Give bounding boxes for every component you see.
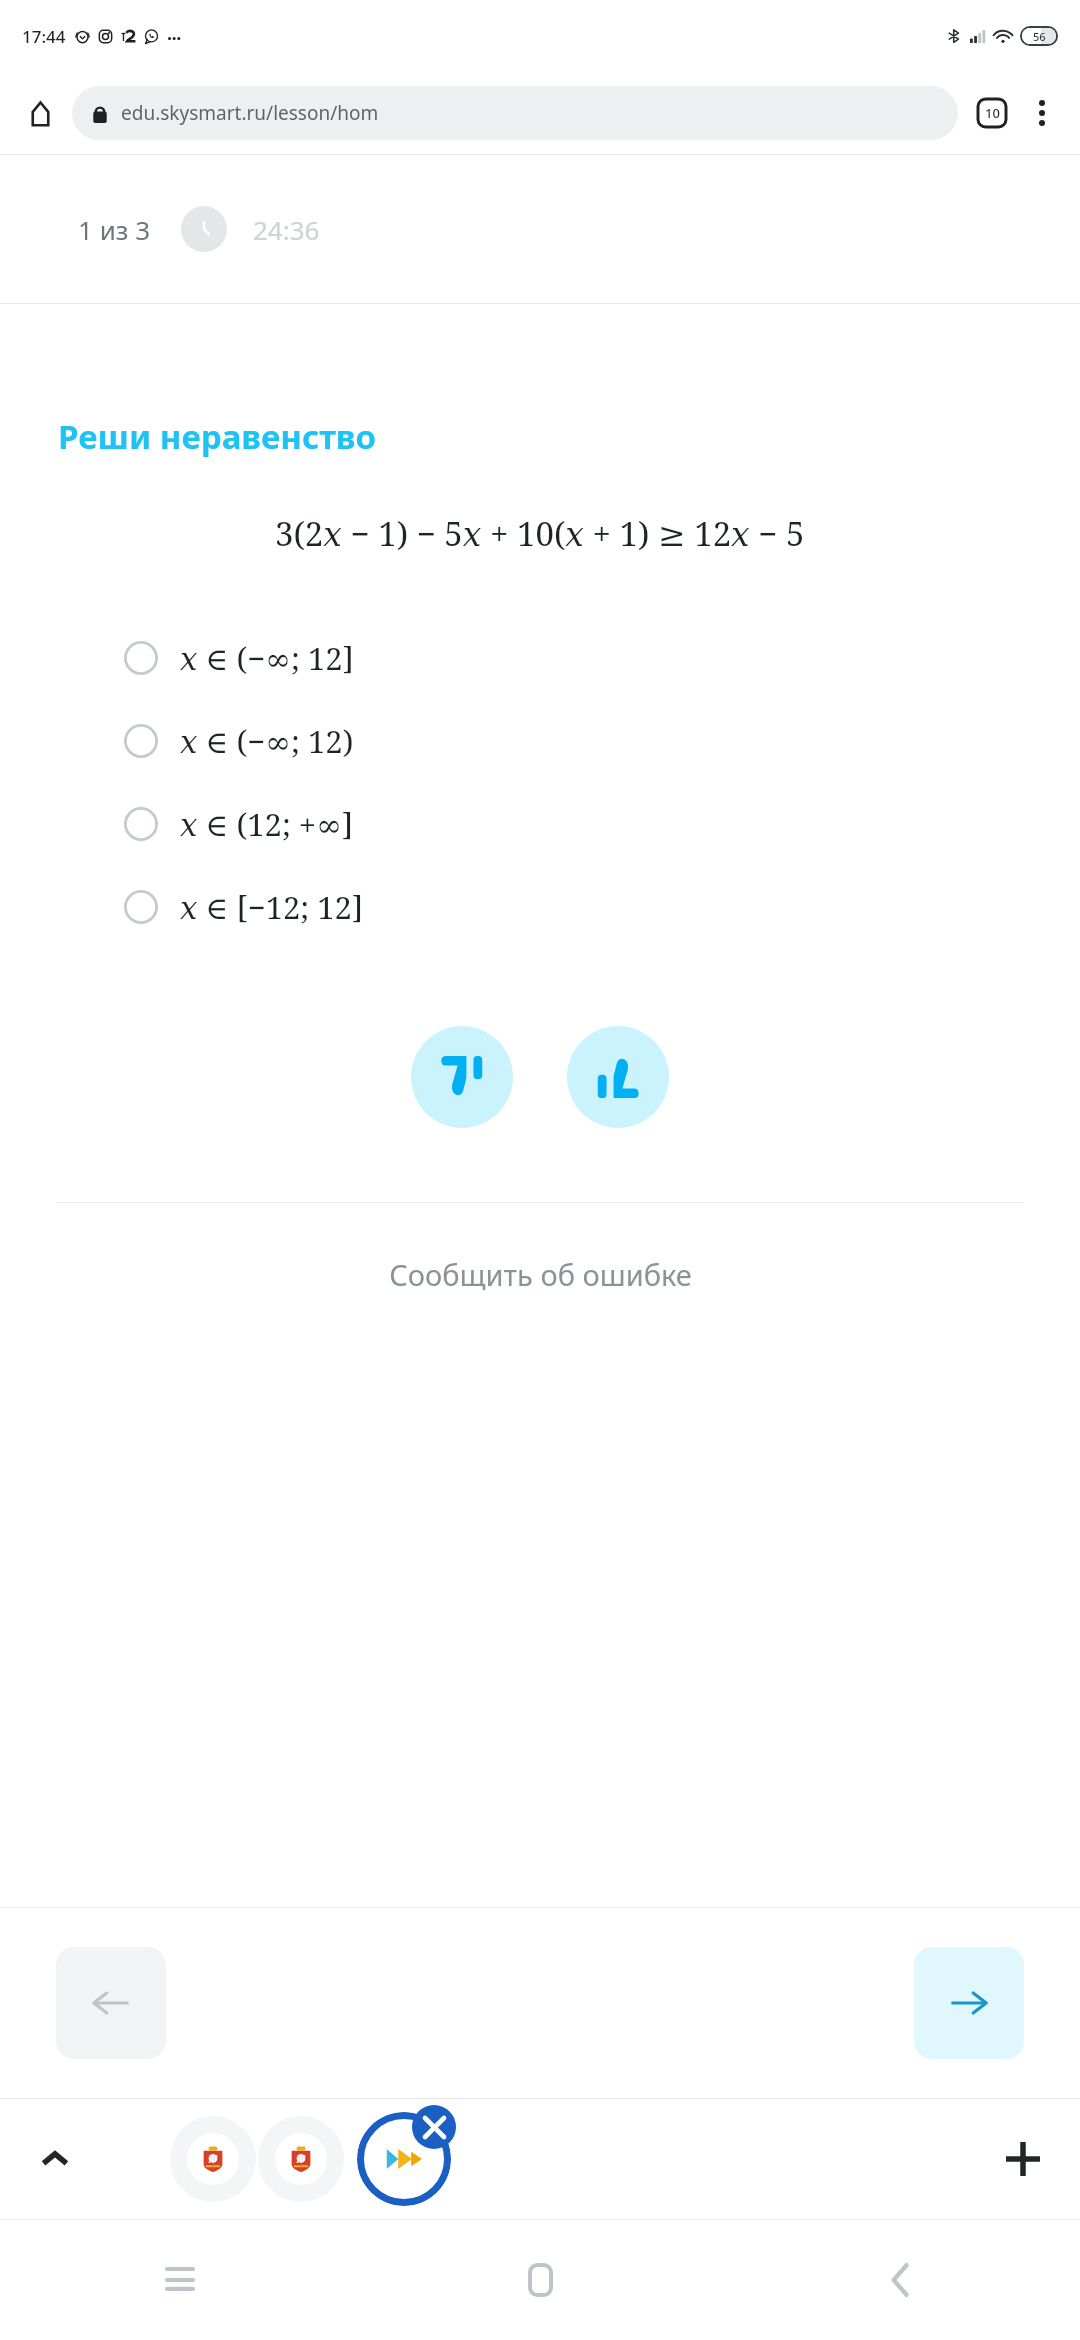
button[interactable]: edu.skysmart.ru/lesson/hom	[72, 86, 958, 140]
staticText: 1 из 3	[78, 212, 151, 247]
staticText: 𝑥 ∈ (12; +∞]	[180, 803, 354, 845]
staticText: Реши неравенство	[58, 414, 377, 459]
button[interactable]: 𝑥 ∈ (−∞; 12)	[0, 699, 1080, 782]
button[interactable]: Home	[14, 87, 66, 139]
staticText: 24:36	[253, 212, 320, 247]
button[interactable]: Next	[914, 1947, 1024, 2059]
button[interactable]: Expand tabs	[24, 2128, 86, 2190]
button[interactable]: More options	[1018, 89, 1066, 137]
button[interactable]: Tabs, 10 open	[966, 87, 1018, 139]
button[interactable]: Current tab	[357, 2112, 451, 2206]
button[interactable]: Close tab	[412, 2105, 456, 2149]
button[interactable]: New tab	[990, 2126, 1056, 2192]
staticText: 𝑥 ∈ (−∞; 12]	[180, 637, 354, 679]
button[interactable]: Like	[567, 1026, 669, 1128]
button[interactable]: 𝑥 ∈ (12; +∞]	[0, 782, 1080, 865]
button[interactable]: Tab	[258, 2116, 344, 2202]
button[interactable]: Сообщить об ошибке	[373, 1247, 708, 1302]
staticText: edu.skysmart.ru/lesson/hom	[121, 100, 379, 126]
button[interactable]: 𝑥 ∈ [−12; 12]	[0, 865, 1080, 948]
staticText: 17:44	[22, 25, 66, 48]
button[interactable]: Recents	[125, 2225, 235, 2335]
staticText: 𝑥 ∈ [−12; 12]	[180, 886, 364, 928]
staticText: 3(2𝑥 − 1) − 5𝑥 + 10(𝑥 + 1) ≥ 12𝑥 − 5	[275, 511, 805, 556]
staticText: 56	[1033, 29, 1046, 44]
button[interactable]: Back	[845, 2225, 955, 2335]
staticText: 𝑥 ∈ (−∞; 12)	[180, 720, 354, 762]
button[interactable]: Dislike	[411, 1026, 513, 1128]
button[interactable]: Tab	[170, 2116, 256, 2202]
button[interactable]: 𝑥 ∈ (−∞; 12]	[0, 616, 1080, 699]
button[interactable]: Home	[485, 2225, 595, 2335]
staticText: 10	[985, 104, 1000, 122]
button[interactable]: Previous	[56, 1947, 166, 2059]
